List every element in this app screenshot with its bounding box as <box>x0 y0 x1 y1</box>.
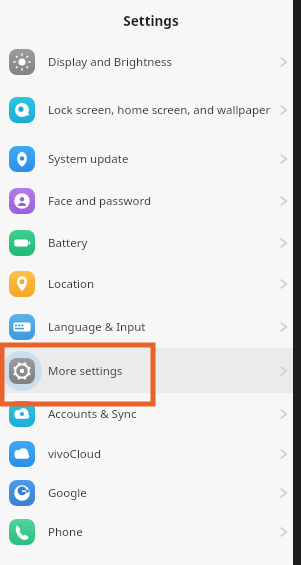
staticText: Accounts & Sync <box>48 406 273 422</box>
staticText: Battery <box>48 235 273 251</box>
button[interactable]: Face and password <box>0 180 301 222</box>
button[interactable]: Google <box>0 473 301 512</box>
button[interactable]: Phone <box>0 512 301 552</box>
button[interactable]: Display and Brightness <box>0 42 301 81</box>
staticText: Display and Brightness <box>48 54 273 70</box>
staticText: Language & Input <box>48 319 273 335</box>
staticText: Phone <box>48 524 273 540</box>
staticText: vivoCloud <box>48 446 273 462</box>
button[interactable]: Accounts & Sync <box>0 393 301 435</box>
staticText: Face and password <box>48 193 273 209</box>
staticText: More settings <box>48 363 273 379</box>
button[interactable]: Lock screen, home screen, and wallpaper <box>0 81 301 138</box>
staticText: Settings <box>123 12 179 30</box>
button[interactable]: More settings <box>0 348 301 393</box>
button[interactable]: Location <box>0 263 301 305</box>
staticText: Lock screen, home screen, and wallpaper <box>48 102 273 118</box>
button[interactable]: Battery <box>0 222 301 263</box>
staticText: System update <box>48 151 273 167</box>
staticText: Google <box>48 485 273 501</box>
button[interactable]: vivoCloud <box>0 435 301 473</box>
button[interactable]: System update <box>0 138 301 180</box>
button[interactable]: Language & Input <box>0 305 301 348</box>
staticText: Location <box>48 276 273 292</box>
